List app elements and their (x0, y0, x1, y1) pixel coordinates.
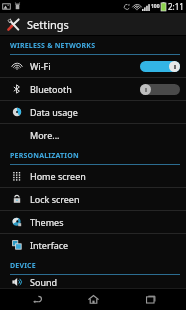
other: Settings (6, 17, 21, 32)
button[interactable]: Wi-Fi (0, 55, 186, 77)
button[interactable]: Recent apps (130, 288, 170, 310)
staticText: DEVICE (10, 261, 36, 271)
button[interactable]: Back (17, 288, 57, 310)
button[interactable]: On (140, 60, 180, 73)
button[interactable]: Bluetooth (0, 78, 186, 100)
button[interactable]: Data usage (0, 101, 186, 123)
staticText: Wi-Fi (30, 60, 140, 72)
button[interactable]: Home screen (0, 165, 186, 187)
button[interactable]: Themes (0, 211, 186, 233)
staticText: Interface (30, 239, 180, 251)
staticText: 100 (151, 3, 160, 10)
staticText: Home screen (30, 170, 180, 182)
staticText: Settings (27, 17, 69, 32)
staticText: More... (30, 129, 180, 141)
button[interactable]: Home (73, 288, 113, 310)
button[interactable]: Sound (0, 275, 186, 288)
staticText: Sound (30, 276, 180, 288)
staticText: Data usage (30, 106, 180, 118)
button[interactable]: Off (140, 83, 180, 96)
staticText: PERSONALIZATION (10, 151, 79, 161)
staticText: Lock screen (30, 193, 180, 205)
staticText: Bluetooth (30, 83, 140, 95)
button[interactable]: More... (0, 124, 186, 146)
staticText: WIRELESS & NETWORKS (10, 41, 96, 51)
button[interactable]: Lock screen (0, 188, 186, 210)
staticText: 2:11 (168, 1, 184, 12)
staticText: Themes (30, 216, 180, 228)
button[interactable]: Interface (0, 234, 186, 256)
button[interactable]: Settings (0, 13, 77, 36)
